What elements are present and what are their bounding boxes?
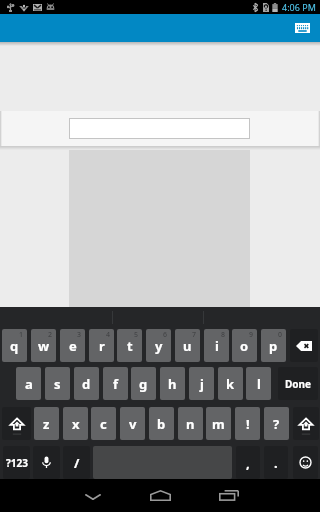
staticText: 5 — [134, 330, 139, 340]
button[interactable]: z — [34, 407, 59, 440]
button[interactable]: Shift — [293, 407, 319, 440]
button[interactable]: a — [16, 367, 41, 400]
staticText: 9 — [249, 330, 254, 340]
button[interactable]: e — [60, 329, 85, 362]
staticText: 1 — [19, 330, 24, 340]
staticText: q — [10, 337, 19, 355]
button[interactable]: o — [232, 329, 257, 362]
staticText: w — [38, 337, 50, 355]
staticText: ? — [273, 415, 280, 433]
button[interactable]: . — [264, 446, 288, 479]
button[interactable]: / — [63, 446, 90, 479]
staticText: d — [82, 375, 91, 393]
button[interactable]: q — [2, 329, 27, 362]
button[interactable]: u — [175, 329, 200, 362]
staticText: r — [99, 337, 105, 355]
button[interactable]: Home — [137, 483, 183, 507]
staticText: l — [257, 375, 261, 393]
button[interactable]: Emoji — [293, 446, 318, 479]
button[interactable]: Hide keyboard — [70, 485, 116, 509]
staticText: 8 — [221, 330, 226, 340]
staticText: , — [246, 454, 250, 472]
staticText: k — [226, 375, 235, 393]
button[interactable]: j — [189, 367, 214, 400]
button[interactable]: Voice input — [33, 446, 60, 479]
button[interactable]: c — [91, 407, 116, 440]
button[interactable]: Shift — [2, 407, 31, 440]
button[interactable]: l — [246, 367, 271, 400]
button[interactable]: m — [206, 407, 231, 440]
button[interactable]: ?123 — [3, 446, 30, 479]
staticText: 7 — [192, 330, 197, 340]
staticText: z — [43, 415, 50, 433]
button[interactable]: p — [261, 329, 286, 362]
button[interactable]: , — [236, 446, 260, 479]
staticText: v — [129, 415, 137, 433]
staticText: n — [186, 415, 195, 433]
staticText: 4:06 PM — [282, 1, 316, 13]
staticText: ?123 — [6, 456, 28, 470]
staticText: x — [72, 415, 80, 433]
button[interactable]: Recent apps — [206, 483, 252, 507]
button[interactable]: b — [149, 407, 174, 440]
button[interactable]: ! — [235, 407, 260, 440]
staticText: 4 — [106, 330, 111, 340]
button[interactable] — [69, 118, 250, 139]
staticText: 3 — [77, 330, 82, 340]
staticText: g — [139, 375, 148, 393]
staticText: ! — [246, 415, 250, 433]
button[interactable]: h — [160, 367, 185, 400]
button[interactable]: d — [74, 367, 99, 400]
staticText: o — [240, 337, 249, 355]
staticText: 6 — [163, 330, 168, 340]
button[interactable]: y — [146, 329, 171, 362]
staticText: c — [100, 415, 107, 433]
staticText: b — [157, 415, 166, 433]
staticText: e — [69, 337, 77, 355]
button[interactable]: g — [131, 367, 156, 400]
button[interactable]: s — [45, 367, 70, 400]
button[interactable]: x — [63, 407, 88, 440]
button[interactable]: k — [218, 367, 243, 400]
button[interactable]: Delete — [290, 329, 318, 362]
staticText: p — [269, 337, 278, 355]
button[interactable]: Show keyboard — [292, 20, 312, 36]
staticText: u — [183, 337, 192, 355]
button[interactable]: t — [117, 329, 142, 362]
staticText: 0 — [278, 330, 283, 340]
button[interactable]: v — [120, 407, 145, 440]
staticText: s — [54, 375, 61, 393]
staticText: . — [274, 454, 278, 472]
staticText: h — [168, 375, 177, 393]
staticText: 2 — [48, 330, 53, 340]
button[interactable]: ? — [264, 407, 289, 440]
staticText: t — [127, 337, 133, 355]
button[interactable]: n — [178, 407, 203, 440]
button[interactable]: r — [89, 329, 114, 362]
button[interactable]: Done — [278, 367, 318, 400]
button[interactable]: i — [204, 329, 229, 362]
button[interactable]: w — [31, 329, 56, 362]
staticText: f — [113, 375, 119, 393]
staticText: y — [155, 337, 163, 355]
staticText: i — [215, 337, 219, 355]
staticText: Done — [285, 377, 312, 391]
staticText: j — [200, 375, 204, 393]
button[interactable]: f — [103, 367, 128, 400]
staticText: a — [25, 375, 33, 393]
staticText: / — [74, 454, 80, 472]
staticText: m — [212, 415, 225, 433]
